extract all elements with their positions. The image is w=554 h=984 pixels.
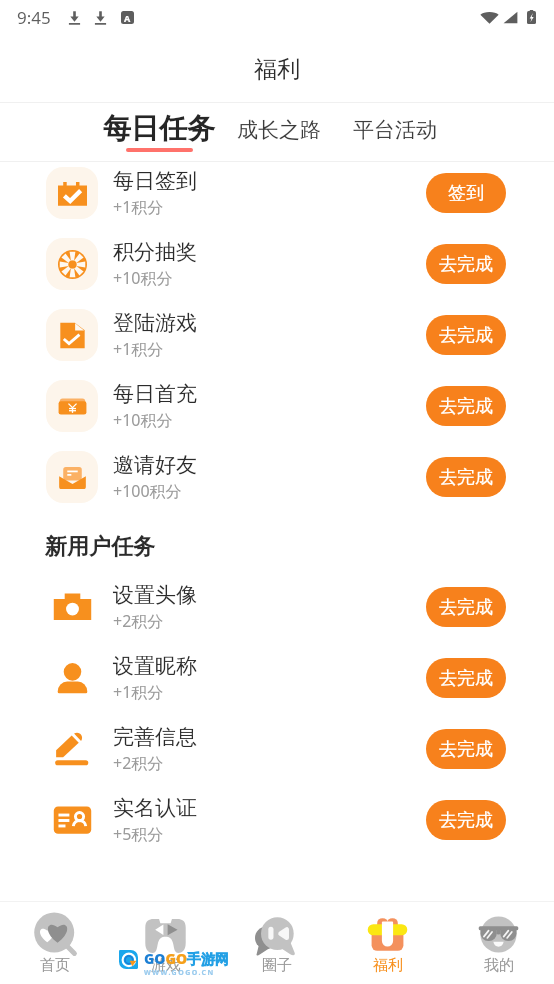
staticText: 签到 (448, 182, 484, 205)
staticText: 去完成 (439, 738, 493, 761)
staticText: 游戏 (151, 956, 181, 975)
staticText: 去完成 (439, 324, 493, 347)
button[interactable]: 每日签到 (0, 157, 554, 228)
button[interactable]: 登陆游戏 (0, 299, 554, 370)
staticText: 每日任务 (103, 111, 215, 146)
staticText: 设置昵称 (113, 653, 197, 679)
staticText: +1积分 (113, 196, 164, 218)
staticText: +100积分 (113, 480, 182, 502)
button[interactable]: 我的 (443, 902, 554, 975)
button[interactable]: 邀请好友 (0, 441, 554, 512)
staticText: 平台活动 (353, 117, 437, 143)
staticText: +2积分 (113, 610, 164, 632)
button[interactable]: 实名认证 (0, 784, 554, 855)
staticText: 福利 (373, 956, 403, 975)
button[interactable]: 去完成 (426, 729, 506, 769)
staticText: +1积分 (113, 338, 164, 360)
staticText: 每日首充 (113, 381, 197, 407)
staticText: 去完成 (439, 596, 493, 619)
button[interactable]: 游戏 (110, 902, 221, 975)
staticText: 去完成 (439, 395, 493, 418)
staticText: 我的 (484, 956, 514, 975)
button[interactable]: 成长之路 (228, 114, 330, 146)
staticText: 邀请好友 (113, 452, 197, 478)
staticText: 每日签到 (113, 168, 197, 194)
button[interactable]: 每日首充 (0, 370, 554, 441)
staticText: 福利 (254, 55, 300, 84)
button[interactable]: 首页 (0, 902, 110, 975)
staticText: 首页 (40, 956, 70, 975)
staticText: +10积分 (113, 267, 173, 289)
staticText: 登陆游戏 (113, 310, 197, 336)
staticText: 圈子 (262, 956, 292, 975)
button[interactable]: 去完成 (426, 587, 506, 627)
button[interactable]: 设置头像 (0, 571, 554, 642)
staticText: WWW.GOGO.CN (144, 968, 215, 978)
button[interactable]: 去完成 (426, 386, 506, 426)
staticText: +1积分 (113, 681, 164, 703)
button[interactable]: 福利 (332, 902, 443, 975)
staticText: 去完成 (439, 466, 493, 489)
staticText: 去完成 (439, 809, 493, 832)
staticText: 积分抽奖 (113, 239, 197, 265)
button[interactable]: 圈子 (221, 902, 332, 975)
staticText: +5积分 (113, 823, 164, 845)
button[interactable]: 每日任务 (94, 108, 224, 155)
staticText: 去完成 (439, 253, 493, 276)
staticText: 完善信息 (113, 724, 197, 750)
button[interactable]: 完善信息 (0, 713, 554, 784)
staticText: A (124, 12, 131, 24)
button[interactable]: 签到 (426, 173, 506, 213)
button[interactable]: 积分抽奖 (0, 228, 554, 299)
staticText: 去完成 (439, 667, 493, 690)
button[interactable]: 去完成 (426, 244, 506, 284)
button[interactable]: 去完成 (426, 658, 506, 698)
staticText: 新用户任务 (45, 533, 155, 561)
staticText: +2积分 (113, 752, 164, 774)
button[interactable]: 去完成 (426, 315, 506, 355)
button[interactable]: 平台活动 (344, 114, 446, 146)
button[interactable]: 去完成 (426, 800, 506, 840)
staticText: 设置头像 (113, 582, 197, 608)
staticText: 9:45 (17, 6, 51, 29)
staticText: 实名认证 (113, 795, 197, 821)
button[interactable]: 设置昵称 (0, 642, 554, 713)
staticText: +10积分 (113, 409, 173, 431)
staticText: 成长之路 (237, 117, 321, 143)
staticText: GOGO手游网 (144, 949, 230, 968)
button[interactable]: 去完成 (426, 457, 506, 497)
